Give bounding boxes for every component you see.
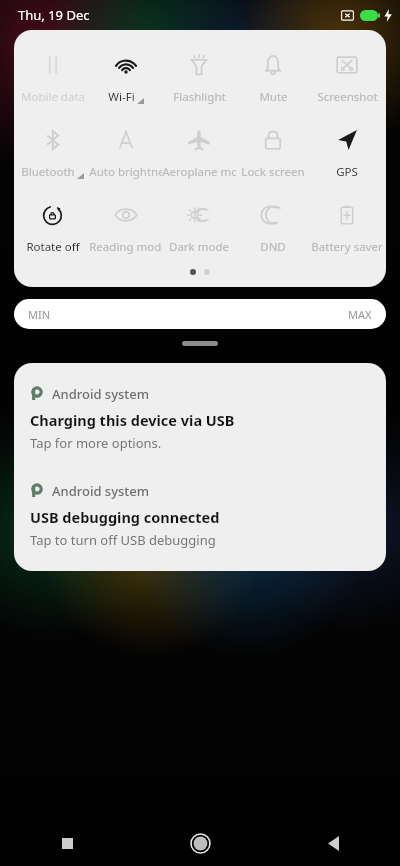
other: DND: [260, 202, 286, 228]
button[interactable]: Flashlight: [162, 48, 236, 109]
staticText: Reading mode: [89, 239, 162, 255]
staticText: MIN: [28, 307, 51, 322]
other: Reading mode: [113, 202, 139, 228]
other: Battery saver: [334, 202, 360, 228]
button[interactable]: Brightness slider: [14, 299, 386, 329]
staticText: GPS: [336, 164, 358, 180]
button[interactable]: Mute: [236, 48, 310, 109]
staticText: Auto brightness: [89, 164, 162, 180]
staticText: MAX: [348, 307, 372, 322]
button[interactable]: Battery saver: [310, 198, 384, 259]
button[interactable]: Home: [134, 820, 267, 866]
button[interactable]: Lock screen: [236, 123, 310, 184]
other: Dark mode: [186, 202, 212, 228]
other: Aeroplane mode: [186, 127, 212, 153]
button[interactable]: Reading mode: [89, 198, 162, 259]
other: Wi-Fi: [113, 52, 139, 78]
other: Auto brightness: [113, 127, 139, 153]
other: Bluetooth: [40, 127, 66, 153]
staticText: Mobile data: [21, 89, 85, 105]
button[interactable]: Android system: [14, 375, 386, 462]
other: GPS: [334, 127, 360, 153]
staticText: Lock screen: [241, 164, 305, 180]
staticText: USB debugging connected: [30, 507, 220, 527]
staticText: Screenshot: [317, 89, 378, 105]
staticText: DND: [260, 239, 286, 255]
button[interactable]: Wi-Fi: [89, 48, 162, 109]
staticText: Rotate off: [26, 239, 80, 255]
button[interactable]: Dark mode: [162, 198, 236, 259]
other: Lock screen: [260, 127, 286, 153]
other: Mobile data: [40, 52, 66, 78]
staticText: Bluetooth: [21, 164, 75, 180]
other: Mute: [260, 52, 286, 78]
button[interactable]: Aeroplane mode: [162, 123, 236, 184]
staticText: Flashlight: [173, 89, 226, 105]
button[interactable]: Screenshot: [310, 48, 384, 109]
staticText: Android system: [52, 482, 150, 500]
other: Screenshot: [334, 52, 360, 78]
button[interactable]: Mobile data: [16, 48, 89, 109]
button[interactable]: GPS: [310, 123, 384, 184]
staticText: Dark mode: [169, 239, 229, 255]
other: Rotate off: [40, 202, 66, 228]
button[interactable]: Android system: [14, 472, 386, 559]
button[interactable]: Recent apps: [0, 820, 134, 866]
staticText: Thu, 19 Dec: [18, 6, 90, 24]
staticText: Mute: [259, 89, 288, 105]
staticText: Aeroplane mode: [162, 164, 236, 180]
button[interactable]: DND: [236, 198, 310, 259]
staticText: Tap for more options.: [30, 434, 162, 452]
staticText: Charging this device via USB: [30, 410, 235, 430]
button[interactable]: Bluetooth: [16, 123, 89, 184]
other: Flashlight: [186, 52, 212, 78]
staticText: Android system: [52, 385, 150, 403]
button[interactable]: Back: [267, 820, 400, 866]
staticText: Tap to turn off USB debugging: [30, 531, 216, 549]
staticText: Battery saver: [311, 239, 383, 255]
staticText: Wi-Fi: [108, 89, 135, 105]
button[interactable]: Rotate off: [16, 198, 89, 259]
button[interactable]: Auto brightness: [89, 123, 162, 184]
